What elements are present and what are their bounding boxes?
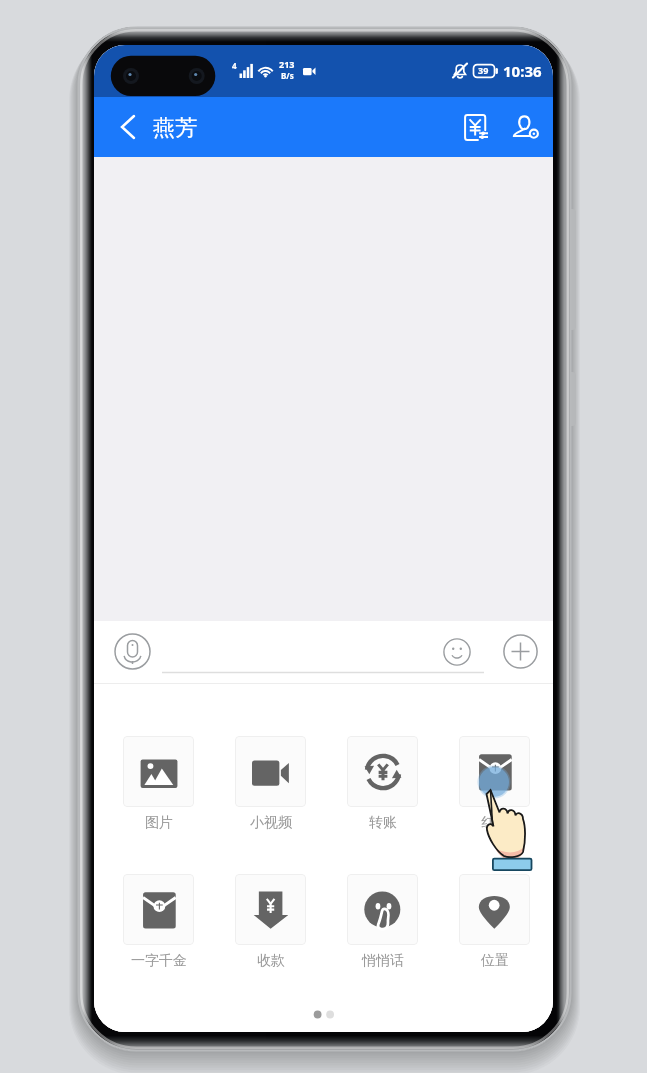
staticText: 4 — [232, 60, 237, 71]
staticText: 213 — [279, 58, 295, 70]
button[interactable]: 一字千金 — [123, 874, 194, 970]
button[interactable]: Emoji — [443, 638, 471, 666]
staticText: 10:36 — [503, 61, 542, 81]
button[interactable]: More options — [503, 634, 538, 669]
button[interactable]: 转账 — [347, 736, 418, 832]
button[interactable]: Voice message — [114, 633, 151, 670]
button[interactable]: Message input — [162, 631, 484, 675]
button[interactable]: 位置 — [459, 874, 530, 970]
staticText: 位置 — [481, 952, 509, 970]
button[interactable]: Back — [106, 105, 150, 149]
button[interactable]: 图片 — [123, 736, 194, 832]
staticText: 39 — [478, 64, 489, 76]
button[interactable]: 红包 — [459, 736, 530, 832]
button[interactable]: 收款 — [235, 874, 306, 970]
button[interactable]: 悄悄话 — [347, 874, 418, 970]
staticText: 小视频 — [250, 814, 292, 832]
button[interactable]: Contact settings — [504, 105, 548, 149]
staticText: 悄悄话 — [362, 952, 404, 970]
staticText: B/s — [281, 70, 294, 81]
staticText: 红包 — [481, 814, 509, 832]
staticText: 收款 — [257, 952, 285, 970]
staticText: 燕芳 — [153, 114, 197, 142]
button[interactable]: 小视频 — [235, 736, 306, 832]
button[interactable]: Transfer — [454, 105, 498, 149]
staticText: 图片 — [145, 814, 173, 832]
staticText: 转账 — [369, 814, 397, 832]
staticText: 一字千金 — [131, 952, 187, 970]
